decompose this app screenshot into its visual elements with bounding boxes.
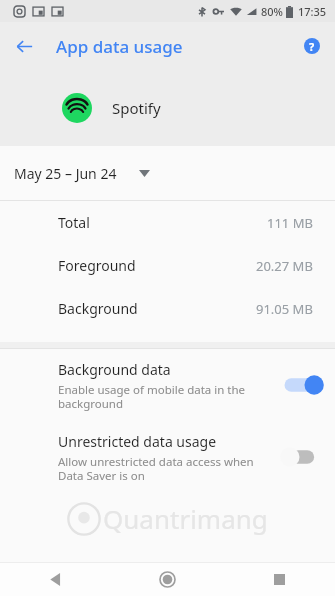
staticText: Background xyxy=(58,299,138,318)
button[interactable]: Recents xyxy=(223,563,335,596)
button[interactable]: Unrestricted data usage xyxy=(0,421,335,493)
staticText: Spotify xyxy=(112,98,161,118)
staticText: Total xyxy=(58,213,90,232)
staticText: ? xyxy=(309,39,315,54)
button[interactable]: Toggle off xyxy=(283,446,321,468)
staticText: 91.05 MB xyxy=(256,300,313,318)
staticText: Enable usage of mobile data in the backg… xyxy=(58,382,246,411)
staticText: Allow unrestricted data access when Data… xyxy=(58,454,254,483)
staticText: Unrestricted data usage xyxy=(58,432,217,451)
button[interactable]: Home xyxy=(111,563,223,596)
button[interactable]: Foreground xyxy=(0,244,335,287)
staticText: 20.27 MB xyxy=(256,257,313,275)
button[interactable]: Total xyxy=(0,201,335,244)
staticText: App data usage xyxy=(56,35,183,58)
staticText: Background data xyxy=(58,360,171,379)
staticText: 17:35 xyxy=(298,4,327,19)
staticText: 111 MB xyxy=(267,214,313,232)
button[interactable]: Help xyxy=(297,31,327,61)
staticText: May 25 – Jun 24 xyxy=(14,164,117,183)
button[interactable]: Back xyxy=(0,563,111,596)
staticText: Foreground xyxy=(58,256,136,275)
button[interactable]: Toggle on xyxy=(283,374,321,396)
staticText: Quantrimang xyxy=(103,501,268,536)
button[interactable]: Background data xyxy=(0,349,335,421)
button[interactable]: May 25 – Jun 24 xyxy=(0,146,335,200)
button[interactable]: Back xyxy=(8,30,40,62)
button[interactable]: Spotify xyxy=(0,70,335,146)
staticText: 80% xyxy=(261,4,283,19)
button[interactable]: Background xyxy=(0,287,335,330)
